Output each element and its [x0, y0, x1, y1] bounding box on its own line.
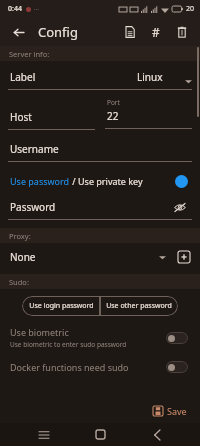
button[interactable]: Back	[8, 22, 28, 42]
button[interactable]: Tags	[146, 22, 166, 42]
staticText: None	[10, 250, 36, 264]
staticText: 0:44	[8, 4, 22, 14]
staticText: Docker functions need sudo	[10, 361, 160, 373]
staticText: Port	[107, 98, 120, 107]
staticText: ···	[34, 5, 39, 13]
button[interactable]: Password	[0, 199, 200, 220]
staticText: Config	[38, 23, 78, 41]
staticText: Use biometric to enter sudo password	[10, 340, 127, 349]
button[interactable]: Recents	[31, 423, 57, 446]
staticText: 22	[107, 109, 119, 123]
button[interactable]: Use biometric	[0, 326, 200, 349]
button[interactable]: Use other password	[100, 296, 178, 316]
staticText: Save	[167, 405, 187, 417]
staticText: Server info:	[9, 49, 50, 59]
staticText: Host	[10, 110, 32, 124]
button[interactable]: Use login password	[22, 296, 100, 316]
staticText: / Use private key	[70, 175, 143, 187]
button[interactable]: Username	[0, 138, 200, 162]
staticText: Use password	[10, 175, 70, 187]
staticText: Label	[10, 70, 36, 84]
button[interactable]: Save	[150, 403, 190, 419]
button[interactable]: Home	[87, 423, 113, 446]
staticText: #	[152, 24, 160, 40]
button[interactable]: Host	[8, 98, 95, 130]
button[interactable]: Docker functions need sudo	[0, 361, 200, 373]
button[interactable]: Back	[144, 423, 170, 446]
staticText: Password	[10, 200, 56, 214]
staticText: Username	[10, 142, 59, 156]
button[interactable]: Add proxy	[176, 249, 192, 265]
staticText: 20	[186, 4, 195, 14]
staticText: Proxy:	[9, 231, 31, 241]
button[interactable]: Delete	[172, 22, 192, 42]
button[interactable]: None	[10, 250, 166, 264]
staticText: Use biometric	[10, 326, 69, 338]
button[interactable]: Port	[105, 98, 192, 129]
staticText: Use other password	[106, 301, 172, 311]
button[interactable]: Show password	[172, 199, 188, 215]
button[interactable]: File	[120, 22, 140, 42]
button[interactable]: Label	[0, 70, 200, 90]
staticText: Linux	[137, 70, 163, 84]
staticText: Sudo:	[9, 277, 29, 287]
button[interactable]: Use password	[0, 169, 200, 193]
staticText: Use login password	[29, 301, 94, 311]
